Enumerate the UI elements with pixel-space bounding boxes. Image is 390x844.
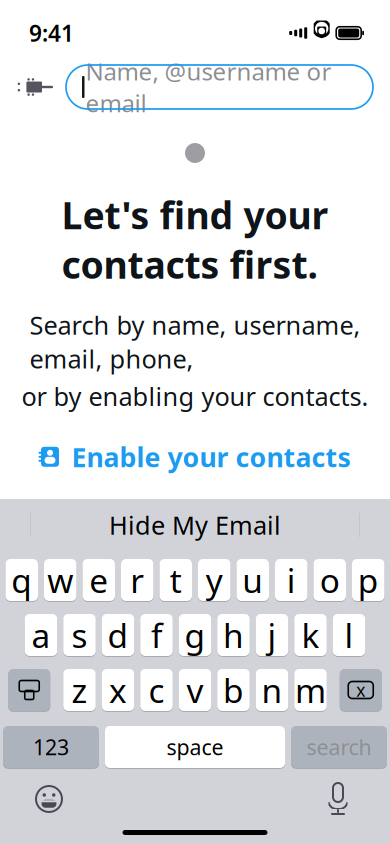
staticText: g xyxy=(184,613,205,657)
staticText: c xyxy=(148,668,164,712)
button[interactable]: Shift xyxy=(8,668,50,712)
staticText: Name, @username or email xyxy=(85,55,331,119)
staticText: q xyxy=(11,558,32,602)
button[interactable]: Enable your contacts xyxy=(29,431,360,482)
staticText: Search by name, username, email, phone, xyxy=(29,308,360,375)
button[interactable]: s xyxy=(63,613,96,657)
staticText: y xyxy=(206,558,223,602)
button[interactable]: j xyxy=(256,613,288,657)
button[interactable]: o xyxy=(313,558,346,602)
button[interactable]: 123 xyxy=(3,725,99,769)
staticText: i xyxy=(287,558,296,602)
staticText: r xyxy=(130,558,144,602)
staticText: Enable your contacts xyxy=(71,439,350,474)
button[interactable]: i xyxy=(275,558,307,602)
staticText: s xyxy=(71,613,87,657)
staticText: e xyxy=(89,558,108,602)
staticText: search xyxy=(306,733,371,761)
staticText: a xyxy=(31,613,50,657)
staticText: 9:41 xyxy=(29,18,74,48)
staticText: t xyxy=(170,558,182,602)
button[interactable]: Back xyxy=(18,63,66,111)
staticText: x xyxy=(109,668,127,712)
button[interactable]: w xyxy=(44,558,76,602)
button[interactable]: f xyxy=(140,613,173,657)
staticText: m xyxy=(295,668,326,712)
staticText: v xyxy=(186,668,203,712)
staticText: f xyxy=(151,613,162,657)
button[interactable]: Hide My Email xyxy=(89,500,301,550)
button[interactable]: search xyxy=(291,725,387,769)
button[interactable]: p xyxy=(352,558,384,602)
staticText: l xyxy=(344,613,353,657)
button[interactable]: n xyxy=(256,668,288,712)
button[interactable]: b xyxy=(217,668,250,712)
staticText: space xyxy=(166,733,223,761)
staticText: p xyxy=(358,558,379,602)
button[interactable]: d xyxy=(102,613,134,657)
staticText: o xyxy=(320,558,340,602)
staticText: w xyxy=(47,558,73,602)
button[interactable]: e xyxy=(82,558,115,602)
button[interactable]: Delete xyxy=(340,668,382,712)
button[interactable]: t xyxy=(159,558,192,602)
staticText: u xyxy=(242,558,263,602)
button[interactable]: v xyxy=(179,668,211,712)
staticText: x xyxy=(356,678,365,701)
button[interactable]: y xyxy=(198,558,230,602)
button[interactable]: Emoji xyxy=(27,777,71,821)
button[interactable]: h xyxy=(217,613,250,657)
staticText: k xyxy=(301,613,319,657)
staticText: b xyxy=(223,668,244,712)
button[interactable]: q xyxy=(5,558,38,602)
staticText: or by enabling your contacts. xyxy=(21,379,368,413)
staticText: z xyxy=(71,668,87,712)
button[interactable]: r xyxy=(121,558,153,602)
button[interactable]: m xyxy=(294,668,327,712)
button[interactable]: k xyxy=(294,613,327,657)
button[interactable]: Name, @username or email xyxy=(66,65,373,109)
staticText: d xyxy=(107,613,128,657)
staticText: Hide My Email xyxy=(109,508,281,542)
button[interactable]: a xyxy=(25,613,57,657)
button[interactable]: l xyxy=(333,613,365,657)
button[interactable]: c xyxy=(140,668,173,712)
staticText: Let's find your contacts first. xyxy=(61,190,328,289)
button[interactable]: Dictate xyxy=(316,777,360,821)
button[interactable]: space xyxy=(105,725,285,769)
button[interactable]: z xyxy=(63,668,96,712)
staticText: h xyxy=(223,613,244,657)
button[interactable]: x xyxy=(102,668,134,712)
staticText: 123 xyxy=(33,733,69,761)
staticText: j xyxy=(267,613,276,657)
staticText: n xyxy=(261,668,282,712)
button[interactable]: g xyxy=(179,613,211,657)
button[interactable]: u xyxy=(236,558,269,602)
